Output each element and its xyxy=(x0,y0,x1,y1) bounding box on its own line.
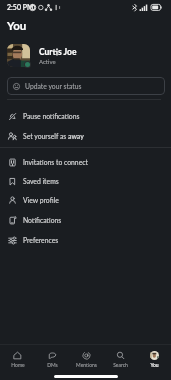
staticText: Invitations to connect xyxy=(23,158,88,166)
staticText: Saved items xyxy=(23,177,59,185)
button[interactable]: View profile xyxy=(0,190,171,210)
staticText: You xyxy=(150,362,159,368)
button[interactable]: Invitations to connect xyxy=(0,152,171,172)
button[interactable]: Pause notifications xyxy=(0,106,171,126)
staticText: Pause notifications xyxy=(23,112,80,120)
staticText: 2:50 PM xyxy=(7,3,34,11)
button[interactable]: Curtis Joe xyxy=(0,40,171,71)
staticText: Mentions xyxy=(76,362,97,368)
button[interactable]: You xyxy=(137,346,171,372)
button[interactable]: Update your status xyxy=(7,77,165,95)
button[interactable]: Mentions xyxy=(69,346,103,372)
staticText: View profile xyxy=(23,196,59,204)
staticText: Home xyxy=(11,362,25,368)
staticText: Active xyxy=(39,58,56,65)
staticText: Curtis Joe xyxy=(39,47,77,57)
staticText: Search xyxy=(113,362,128,368)
button[interactable]: Notifications xyxy=(0,210,171,230)
staticText: Set yourself as xyxy=(23,132,68,140)
staticText: Notifications xyxy=(23,216,62,224)
button[interactable]: Set yourself as xyxy=(0,126,171,146)
button[interactable]: Saved items xyxy=(0,171,171,191)
button[interactable]: Home xyxy=(0,346,35,372)
button[interactable]: Search xyxy=(103,346,137,372)
staticText: Update your status xyxy=(25,82,82,90)
staticText: Preferences xyxy=(23,236,59,244)
staticText: You xyxy=(7,19,27,33)
staticText: away xyxy=(68,132,84,140)
button[interactable]: Preferences xyxy=(0,230,171,250)
staticText: DMs xyxy=(47,362,58,368)
button[interactable]: DMs xyxy=(35,346,69,372)
